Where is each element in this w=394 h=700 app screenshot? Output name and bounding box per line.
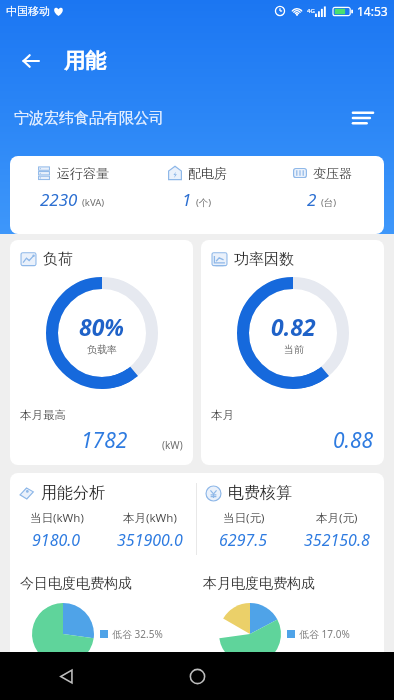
staticText: 今日电度电费构成	[20, 575, 132, 593]
button[interactable]: Menu	[346, 101, 380, 135]
button[interactable]: Back	[0, 652, 132, 700]
staticText: 负荷	[43, 250, 73, 269]
staticText: 本月	[211, 408, 234, 422]
staticText: 9180.0	[32, 529, 81, 551]
staticText: (个)	[196, 196, 212, 209]
staticText: 用能分析	[41, 483, 105, 503]
staticText: 1782	[81, 426, 128, 455]
staticText: 低谷 32.5%	[112, 627, 163, 641]
button[interactable]: 负荷	[10, 240, 193, 465]
button[interactable]: Home	[132, 652, 263, 700]
staticText: 2230	[40, 188, 78, 211]
staticText: 用能	[64, 48, 106, 74]
staticText: 352150.8	[304, 529, 370, 551]
staticText: 1	[182, 188, 192, 211]
button[interactable]: 用能分析	[10, 473, 384, 700]
staticText: (kW)	[162, 438, 183, 452]
staticText: 本月(元)	[316, 510, 358, 526]
staticText: 本月电度电费构成	[203, 575, 315, 593]
button[interactable]: Back	[10, 40, 52, 82]
staticText: 80%	[79, 311, 125, 342]
button[interactable]: 功率因数	[201, 240, 384, 465]
staticText: 14:53	[357, 3, 388, 19]
staticText: 本月(kWh)	[123, 510, 177, 526]
staticText: 电费核算	[228, 483, 292, 503]
staticText: 运行容量	[57, 165, 109, 181]
staticText: 0.82	[271, 311, 316, 342]
staticText: 负载率	[87, 343, 117, 356]
staticText: 当前	[284, 343, 304, 356]
staticText: 0.88	[333, 426, 374, 455]
staticText: 2	[307, 188, 317, 211]
staticText: 宁波宏纬食品有限公司	[14, 109, 164, 128]
staticText: 4G	[307, 7, 315, 15]
staticText: 功率因数	[234, 250, 294, 269]
staticText: 变压器	[313, 165, 352, 181]
staticText: 中国移动	[6, 4, 50, 18]
staticText: 6297.5	[219, 529, 268, 551]
staticText: (台)	[321, 196, 337, 209]
staticText: (kVA)	[82, 196, 105, 209]
button[interactable]: 运行容量	[10, 156, 384, 234]
staticText: 本月最高	[20, 408, 66, 422]
staticText: 当日(kWh)	[30, 510, 84, 526]
staticText: 配电房	[188, 165, 227, 181]
staticText: 351900.0	[117, 529, 183, 551]
staticText: 低谷 17.0%	[299, 627, 350, 641]
staticText: 当日(元)	[223, 510, 265, 526]
